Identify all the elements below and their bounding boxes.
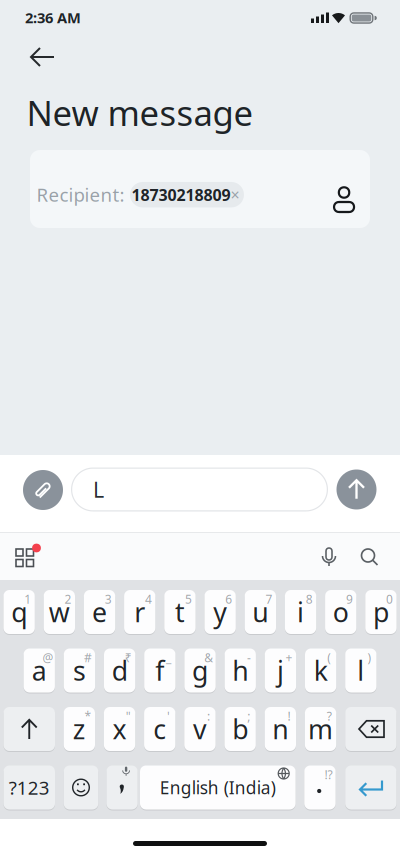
staticText: English (India) [160,776,276,799]
button[interactable]: s [64,648,95,692]
button[interactable] [3,707,55,751]
staticText: m [308,711,333,747]
button[interactable]: i [285,590,316,634]
button[interactable]: l [345,648,376,692]
button[interactable] [23,470,63,510]
staticText: New message [26,89,253,135]
button[interactable]: f [144,648,175,692]
button[interactable] [64,765,98,809]
button[interactable]: p [365,590,397,634]
button[interactable]: e [84,590,115,634]
button[interactable]: o [325,590,356,634]
staticText: h [232,653,248,688]
staticText: @ [42,649,53,665]
staticText: q [11,594,27,630]
button[interactable] [20,46,64,67]
staticText: f [155,653,164,688]
button[interactable] [15,546,39,568]
button[interactable] [140,765,296,809]
button[interactable]: q [3,590,35,634]
staticText: ! [287,708,290,724]
staticText: e [92,594,107,630]
button[interactable] [304,765,336,809]
staticText: k [314,653,328,688]
staticText: 18730218809 [131,184,230,205]
staticText: ; [247,708,250,724]
button[interactable]: y [204,590,236,634]
button[interactable]: v [184,707,216,751]
staticText: l [357,653,364,688]
staticText: 6 [225,591,232,607]
staticText: ?123 [9,775,50,800]
staticText: 9 [346,591,353,607]
staticText: ) [367,649,371,665]
staticText: + [286,649,293,665]
staticText: × [230,184,239,205]
button[interactable]: c [144,707,175,751]
staticText: t [175,594,185,630]
button[interactable]: z [64,707,95,751]
staticText: * [84,708,91,724]
staticText: w [49,594,70,630]
staticText: 5 [185,591,192,607]
button[interactable]: h [225,648,256,692]
staticText: v [193,711,207,747]
staticText: " [126,708,131,724]
staticText: n [272,711,288,747]
staticText: : [207,708,210,724]
staticText: u [252,594,268,630]
staticText: 2:36 AM [25,8,81,27]
button[interactable]: u [245,590,276,634]
button[interactable] [345,765,396,809]
button[interactable]: j [265,648,296,692]
staticText: r [134,594,145,630]
button[interactable]: k [305,648,336,692]
button[interactable]: b [224,707,256,751]
button[interactable]: x [104,707,135,751]
button[interactable] [334,187,355,212]
staticText: g [192,653,208,688]
staticText: ( [327,649,331,665]
button[interactable]: 18730218809 [130,182,244,207]
staticText: !? [324,766,332,782]
staticText: c [153,711,166,747]
staticText: ₹ [125,649,132,665]
button[interactable]: a [24,648,55,692]
staticText: & [204,649,213,665]
button[interactable]: g [184,648,216,692]
staticText: 1 [24,591,31,607]
staticText: 4 [145,591,152,607]
staticText: 0 [386,591,393,607]
staticText: 3 [105,591,112,607]
staticText: d [112,653,128,688]
staticText: 8 [306,591,313,607]
staticText: x [113,711,127,747]
button[interactable]: m [305,707,336,751]
staticText: L [93,475,104,504]
button[interactable]: L [71,467,328,511]
button[interactable]: ?123 [3,765,55,809]
staticText: 2 [64,591,71,607]
button[interactable] [361,548,378,565]
button[interactable] [345,707,396,751]
staticText: j [277,653,284,688]
button[interactable]: t [164,590,196,634]
staticText: y [213,594,227,630]
staticText: # [84,649,92,665]
button[interactable]: d [104,648,135,692]
staticText: s [73,653,86,688]
staticText: i [297,594,304,630]
button[interactable] [320,547,338,567]
staticText: 7 [265,591,272,607]
button[interactable] [106,765,138,809]
staticText: b [232,711,248,747]
staticText: a [32,653,47,688]
staticText: Recipient: [36,182,124,207]
button[interactable]: n [265,707,296,751]
staticText: p [373,594,389,630]
button[interactable] [336,469,376,509]
button[interactable]: w [44,590,75,634]
staticText: z [73,711,86,747]
button[interactable]: r [124,590,155,634]
staticText: _ [166,649,171,665]
